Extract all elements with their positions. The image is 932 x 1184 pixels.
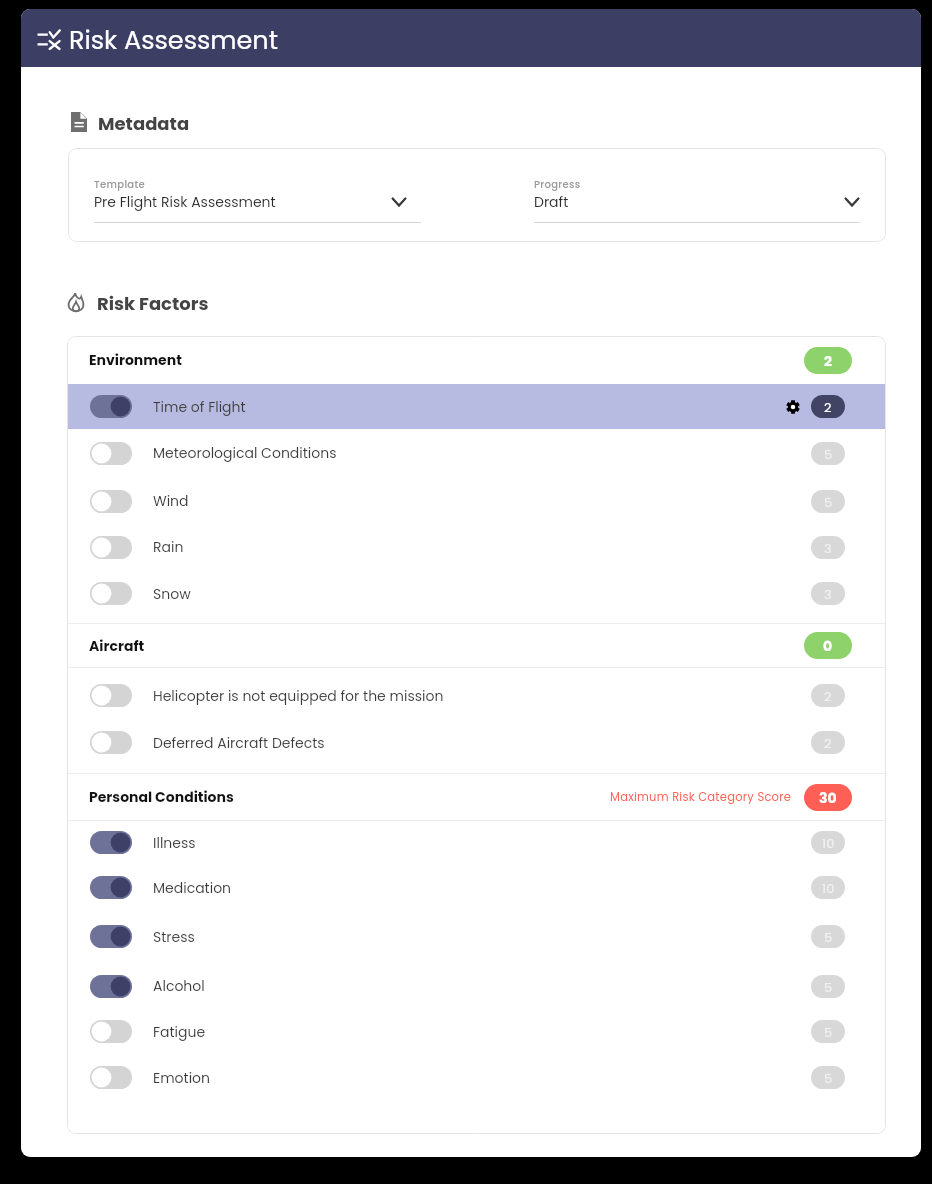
button[interactable]: Toggle <box>67 525 886 569</box>
staticText: 0 <box>823 636 833 656</box>
button[interactable]: Toggle <box>67 1010 886 1053</box>
staticText: Stress <box>153 927 195 947</box>
button[interactable]: Toggle <box>67 821 886 864</box>
staticText: Medication <box>153 878 232 898</box>
button[interactable]: Rules <box>21 9 921 67</box>
button[interactable]: Toggle <box>90 925 132 948</box>
staticText: 2 <box>824 687 832 705</box>
button[interactable]: Personal Conditions <box>67 774 886 820</box>
staticText: 2 <box>824 734 832 752</box>
staticText: Alcohol <box>153 976 205 996</box>
staticText: 5 <box>824 493 833 511</box>
staticText: 2 <box>824 398 832 416</box>
button[interactable]: Toggle <box>67 672 886 719</box>
staticText: 5 <box>824 928 833 946</box>
button[interactable]: Toggle <box>67 569 886 618</box>
staticText: Environment <box>89 350 182 370</box>
staticText: Metadata <box>98 111 190 133</box>
staticText: Pre Flight Risk Assessment <box>94 192 391 212</box>
other: Open dropdown <box>844 192 860 212</box>
staticText: Rain <box>153 537 184 557</box>
staticText: Snow <box>153 584 191 604</box>
staticText: Template <box>94 177 146 191</box>
button[interactable]: Toggle <box>67 384 886 429</box>
button[interactable]: Toggle <box>67 429 886 477</box>
staticText: 5 <box>824 978 833 996</box>
staticText: Personal Conditions <box>89 787 234 807</box>
button[interactable]: Toggle <box>90 442 132 465</box>
staticText: Fatigue <box>153 1022 206 1042</box>
staticText: 5 <box>824 1023 833 1041</box>
staticText: Draft <box>534 192 844 212</box>
button[interactable]: Toggle <box>90 1020 132 1043</box>
other: Rules <box>37 30 60 49</box>
button[interactable]: Toggle <box>67 864 886 911</box>
staticText: 10 <box>822 879 835 897</box>
button[interactable]: Toggle <box>67 962 886 1010</box>
staticText: Deferred Aircraft Defects <box>153 733 325 753</box>
staticText: Helicopter is not equipped for the missi… <box>153 686 444 706</box>
button[interactable]: Toggle <box>90 536 132 559</box>
button[interactable]: Toggle <box>90 731 132 754</box>
staticText: Risk Factors <box>97 291 209 313</box>
staticText: Maximum Risk Category Score <box>610 789 792 805</box>
button[interactable]: Toggle <box>90 684 132 707</box>
staticText: Emotion <box>153 1068 211 1088</box>
staticText: 2 <box>824 351 832 371</box>
button[interactable]: Risk Factors <box>67 291 209 313</box>
other: Settings <box>786 400 800 414</box>
button[interactable]: Toggle <box>67 477 886 525</box>
button[interactable]: Metadata <box>71 111 190 133</box>
button[interactable]: Toggle <box>90 582 132 605</box>
button[interactable]: Toggle <box>67 911 886 962</box>
button[interactable]: Template <box>94 148 421 242</box>
button[interactable]: Toggle <box>90 975 132 998</box>
other: Open dropdown <box>391 192 407 212</box>
button[interactable]: Environment <box>67 336 886 384</box>
staticText: 3 <box>824 539 832 557</box>
staticText: Wind <box>153 491 189 511</box>
staticText: Illness <box>153 833 196 853</box>
staticText: 5 <box>824 1069 833 1087</box>
staticText: 3 <box>824 585 832 603</box>
button[interactable]: Toggle <box>90 831 132 854</box>
button[interactable]: Toggle <box>90 490 132 513</box>
button[interactable]: Aircraft <box>67 624 886 667</box>
staticText: Risk Assessment <box>69 22 278 58</box>
staticText: Meteorological Conditions <box>153 443 337 463</box>
staticText: 5 <box>824 445 833 463</box>
staticText: 30 <box>819 788 837 808</box>
button[interactable]: Toggle <box>90 1066 132 1089</box>
staticText: 10 <box>822 834 835 852</box>
staticText: Progress <box>534 177 581 191</box>
staticText: Time of Flight <box>153 397 246 417</box>
staticText: Aircraft <box>89 636 145 656</box>
button[interactable]: Toggle <box>90 395 132 418</box>
button[interactable]: Progress <box>534 148 860 242</box>
button[interactable]: Toggle <box>67 719 886 766</box>
button[interactable]: Toggle <box>67 1053 886 1102</box>
button[interactable]: Toggle <box>90 876 132 899</box>
